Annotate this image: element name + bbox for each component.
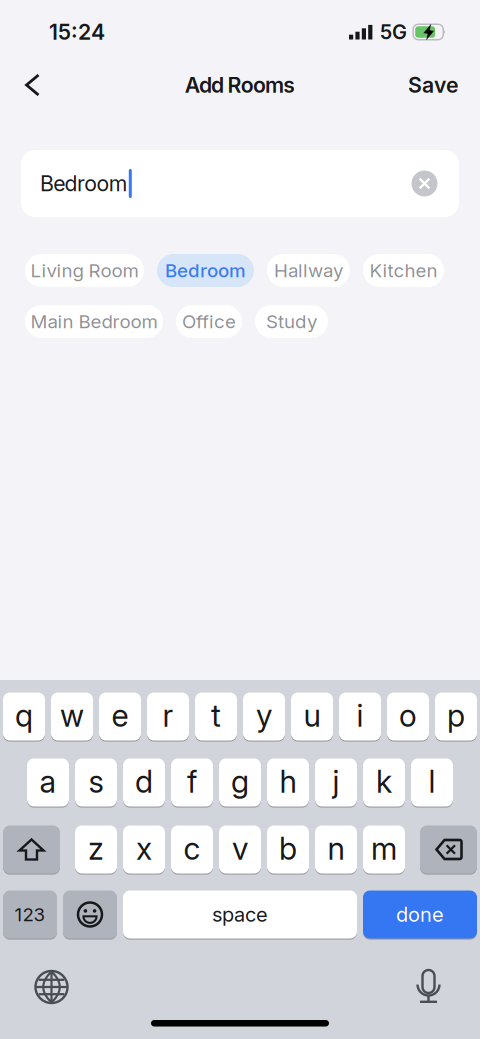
staticText: p [447, 697, 465, 734]
button[interactable]: s [75, 758, 117, 807]
button[interactable]: Save [408, 72, 480, 98]
staticText: v [232, 830, 248, 867]
button[interactable]: j [315, 758, 357, 807]
staticText: Bedroom [40, 171, 128, 196]
staticText: i [356, 697, 363, 734]
staticText: Bedroom [165, 259, 246, 281]
staticText: f [187, 763, 197, 800]
button[interactable]: u [291, 692, 333, 741]
staticText: l [428, 763, 435, 800]
button[interactable]: Shift [3, 825, 60, 874]
staticText: m [371, 830, 397, 867]
staticText: z [88, 830, 104, 867]
staticText: 15:24 [49, 19, 105, 45]
button[interactable]: Clear text [411, 170, 437, 196]
button[interactable]: l [411, 758, 453, 807]
staticText: r [162, 697, 173, 734]
staticText: Office [182, 310, 236, 332]
button[interactable]: p [435, 692, 477, 741]
button[interactable]: Back [0, 73, 41, 96]
button[interactable]: w [51, 692, 93, 741]
staticText: n [327, 830, 344, 867]
staticText: Main Bedroom [30, 310, 157, 332]
button[interactable]: r [147, 692, 189, 741]
staticText: 5G [380, 20, 407, 44]
button[interactable]: Study [255, 305, 328, 338]
button[interactable]: Living Room [25, 254, 144, 287]
staticText: g [231, 763, 249, 800]
button[interactable]: a [27, 758, 69, 807]
staticText: d [135, 763, 153, 800]
staticText: s [88, 763, 103, 800]
button[interactable]: Main Bedroom [25, 305, 163, 338]
staticText: w [60, 697, 84, 734]
button[interactable]: q [3, 692, 45, 741]
button[interactable]: Hallway [267, 254, 350, 287]
button[interactable]: Dictation [416, 970, 441, 1004]
button[interactable]: d [123, 758, 165, 807]
staticText: e [111, 697, 128, 734]
staticText: Hallway [274, 259, 343, 281]
staticText: 123 [14, 903, 45, 925]
button[interactable]: b [267, 825, 309, 874]
staticText: k [376, 763, 392, 800]
staticText: x [136, 830, 152, 867]
button[interactable]: g [219, 758, 261, 807]
staticText: space [212, 903, 268, 926]
staticText: q [15, 697, 33, 734]
button[interactable]: v [219, 825, 261, 874]
button[interactable]: Office [176, 305, 242, 338]
button[interactable]: i [339, 692, 381, 741]
button[interactable]: Kitchen [363, 254, 444, 287]
button[interactable]: x [123, 825, 165, 874]
staticText: y [256, 697, 272, 734]
button[interactable]: Bedroom [157, 254, 254, 287]
button[interactable]: f [171, 758, 213, 807]
staticText: b [279, 830, 297, 867]
button[interactable]: Emoji [63, 890, 117, 939]
staticText: Add Rooms [185, 72, 295, 98]
staticText: Living Room [30, 259, 138, 281]
staticText: h [279, 763, 296, 800]
staticText: t [211, 697, 221, 734]
staticText: Kitchen [369, 259, 437, 281]
button[interactable]: Numbers [3, 890, 57, 939]
button[interactable]: m [363, 825, 405, 874]
button[interactable]: done [363, 890, 477, 939]
button[interactable]: k [363, 758, 405, 807]
staticText: j [332, 763, 339, 800]
button[interactable]: t [195, 692, 237, 741]
button[interactable]: h [267, 758, 309, 807]
staticText: u [303, 697, 320, 734]
staticText: a [39, 763, 56, 800]
button[interactable]: space [123, 890, 357, 939]
button[interactable]: c [171, 825, 213, 874]
button[interactable]: z [75, 825, 117, 874]
staticText: c [183, 830, 200, 867]
staticText: Save [408, 72, 459, 98]
staticText: o [399, 697, 417, 734]
button[interactable]: Delete [420, 825, 477, 874]
button[interactable]: e [99, 692, 141, 741]
button[interactable]: o [387, 692, 429, 741]
button[interactable]: Switch keyboard [35, 970, 68, 1003]
staticText: done [396, 903, 444, 926]
button[interactable]: n [315, 825, 357, 874]
staticText: Study [266, 310, 317, 332]
button[interactable]: y [243, 692, 285, 741]
